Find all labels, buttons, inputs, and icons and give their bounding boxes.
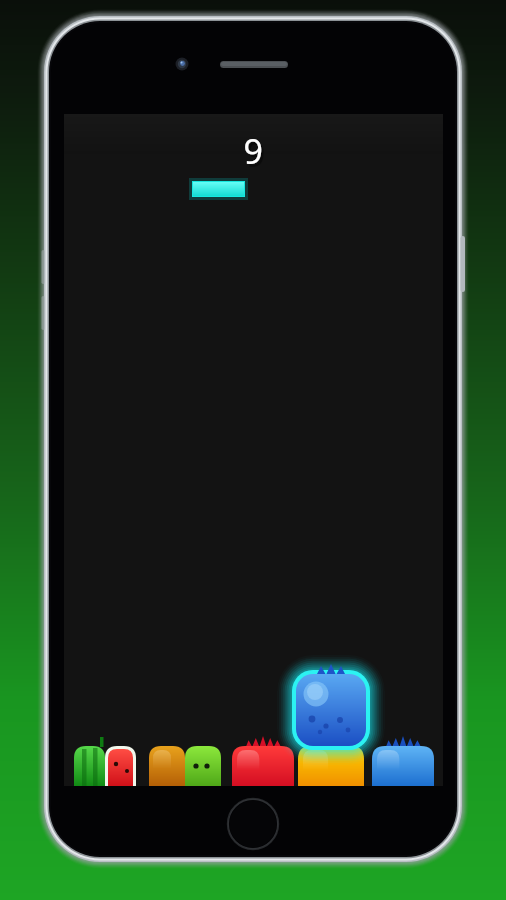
button[interactable]: Fruit stacking game on phone: [0, 0, 506, 900]
